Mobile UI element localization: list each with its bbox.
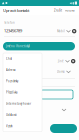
- staticText: Poznámky: [6, 79, 18, 83]
- staticText: Hotovo: [65, 9, 75, 12]
- staticText: Domů: [57, 70, 65, 73]
- staticText: Jiné: [58, 59, 64, 63]
- staticText: Jméno (fonetický): [6, 44, 30, 48]
- staticText: Přezdívka: [6, 91, 17, 94]
- button[interactable]: Přezdívka: [3, 87, 42, 98]
- staticText: 123456789: [4, 28, 22, 33]
- button[interactable]: Chat: [3, 53, 42, 64]
- button[interactable]: Události: [3, 109, 42, 120]
- button[interactable]: Hotovo: [62, 9, 75, 12]
- button[interactable]: Poznámky: [3, 75, 42, 87]
- button[interactable]: Upravit kontakt: [3, 8, 29, 13]
- staticText: Chat: [6, 57, 12, 60]
- staticText: Události: [6, 113, 17, 117]
- staticText: Mobil: [57, 29, 65, 33]
- button[interactable]: Internetový hovor: [3, 98, 42, 109]
- staticText: Internetový hovor: [6, 102, 31, 105]
- staticText: Vztah: [6, 124, 13, 128]
- button[interactable]: Zrušit: [54, 9, 62, 12]
- staticText: Telefon: [4, 21, 15, 24]
- button[interactable]: Vztah: [3, 120, 42, 132]
- button[interactable]: Adresa: [3, 64, 42, 75]
- staticText: Zrušit: [54, 9, 62, 12]
- staticText: Adresa: [6, 68, 15, 72]
- button[interactable]: Přidat další pole: [50, 124, 77, 133]
- staticText: Upravit kontakt: [3, 8, 29, 13]
